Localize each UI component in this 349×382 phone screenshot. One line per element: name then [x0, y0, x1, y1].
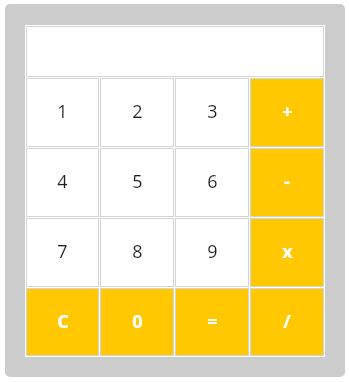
staticText: 9: [207, 239, 218, 264]
button[interactable]: 5: [101, 149, 173, 216]
staticText: +: [282, 99, 293, 124]
staticText: -: [284, 169, 290, 194]
button[interactable]: Equals: [176, 289, 248, 355]
staticText: 4: [57, 169, 68, 194]
button[interactable]: 7: [27, 219, 98, 286]
staticText: C: [57, 309, 69, 334]
button[interactable]: 1: [27, 79, 98, 146]
button[interactable]: Minus: [251, 149, 323, 216]
button[interactable]: Divide: [251, 289, 323, 355]
staticText: 8: [132, 239, 143, 264]
staticText: 0: [132, 309, 143, 334]
button[interactable]: 4: [27, 149, 98, 216]
staticText: =: [207, 309, 218, 334]
button[interactable]: 9: [176, 219, 248, 286]
staticText: 6: [207, 169, 218, 194]
button[interactable]: 2: [101, 79, 173, 146]
staticText: 1: [57, 99, 68, 124]
button[interactable]: Plus: [251, 79, 323, 146]
button[interactable]: Multiply: [251, 219, 323, 286]
staticText: 2: [132, 99, 143, 124]
button[interactable]: 3: [176, 79, 248, 146]
staticText: 7: [57, 239, 68, 264]
button[interactable]: 6: [176, 149, 248, 216]
button[interactable]: Clear: [27, 289, 98, 355]
button[interactable]: 0: [101, 289, 173, 355]
staticText: /: [283, 309, 291, 334]
staticText: 5: [132, 169, 143, 194]
staticText: x: [282, 239, 293, 264]
staticText: 3: [207, 99, 218, 124]
button[interactable]: 8: [101, 219, 173, 286]
